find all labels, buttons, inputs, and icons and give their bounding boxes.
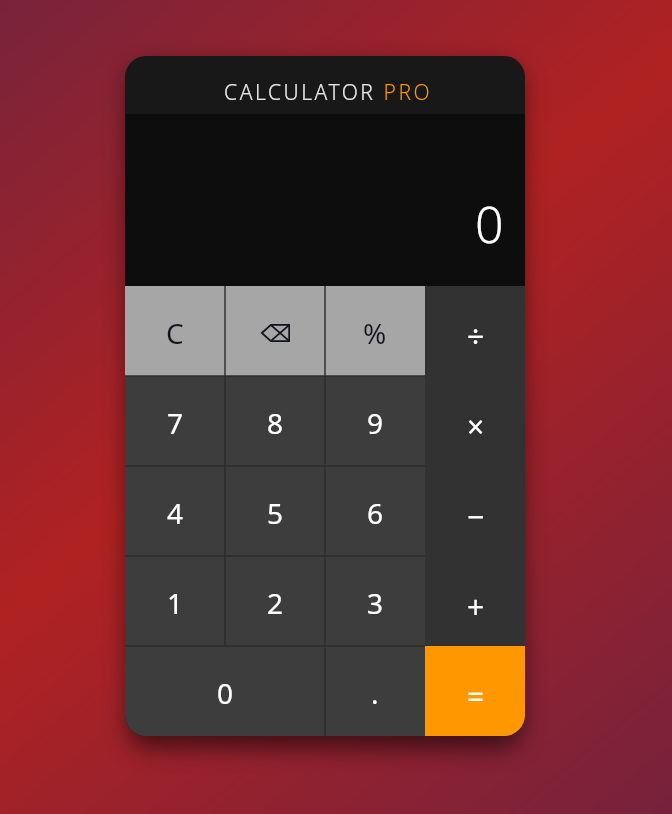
staticText: . <box>371 674 379 712</box>
staticText: 5 <box>267 494 284 532</box>
button[interactable]: Divide <box>425 286 525 376</box>
button[interactable]: Equals <box>425 646 525 736</box>
staticText: 8 <box>267 404 284 442</box>
staticText: ÷ <box>467 316 485 357</box>
button[interactable]: Add <box>425 556 525 646</box>
button[interactable]: 4 <box>125 466 225 556</box>
staticText: = <box>467 676 485 717</box>
button[interactable]: 3 <box>325 556 425 646</box>
staticText: C <box>166 314 184 352</box>
button[interactable]: 6 <box>325 466 425 556</box>
staticText: + <box>467 586 485 627</box>
staticText: × <box>467 406 485 447</box>
staticText: − <box>467 496 485 537</box>
staticText: 1 <box>167 584 184 622</box>
staticText: CALCULATOR PRO <box>224 78 433 107</box>
button[interactable]: Subtract <box>425 466 525 556</box>
button[interactable]: 0 <box>125 646 325 736</box>
staticText: % <box>363 314 387 352</box>
staticText: 6 <box>367 494 384 532</box>
button[interactable]: Percent <box>325 286 425 376</box>
staticText: 7 <box>167 404 184 442</box>
staticText: 2 <box>267 584 284 622</box>
button[interactable]: Clear <box>125 286 225 376</box>
button[interactable]: 2 <box>225 556 325 646</box>
button[interactable]: 7 <box>125 376 225 466</box>
staticText: 0 <box>475 190 504 258</box>
button[interactable]: CALCULATOR PRO <box>125 56 525 114</box>
button[interactable]: 8 <box>225 376 325 466</box>
button[interactable]: 5 <box>225 466 325 556</box>
button[interactable]: Decimal point <box>325 646 425 736</box>
button[interactable]: 9 <box>325 376 425 466</box>
staticText: 0 <box>217 674 234 712</box>
button[interactable]: 1 <box>125 556 225 646</box>
staticText: 3 <box>367 584 384 622</box>
button[interactable]: Backspace <box>225 286 325 376</box>
button[interactable]: Multiply <box>425 376 525 466</box>
staticText: 4 <box>167 494 184 532</box>
staticText: 9 <box>367 404 384 442</box>
